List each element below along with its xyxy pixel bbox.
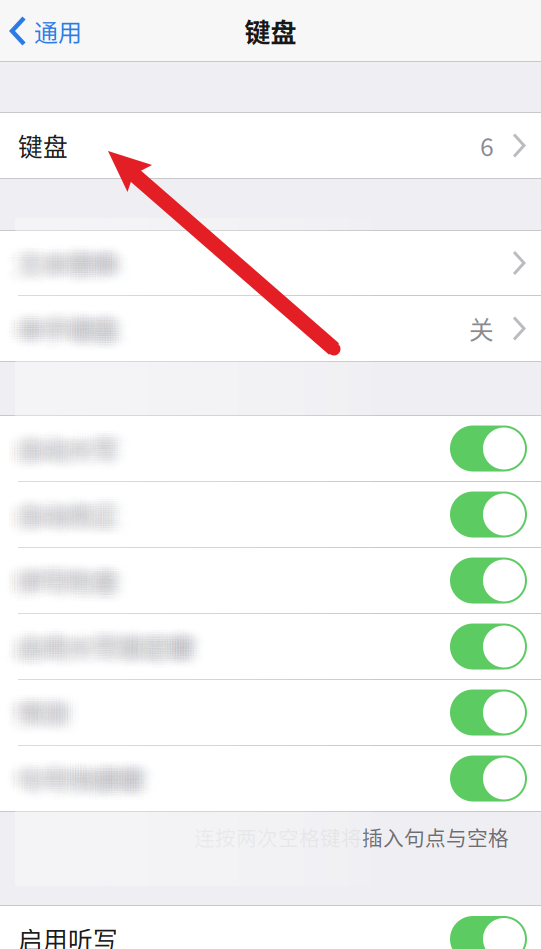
staticText: 自动大写 bbox=[23, 433, 123, 468]
staticText: 自动改正 bbox=[26, 492, 126, 528]
staticText: 文本替换 bbox=[23, 252, 123, 287]
staticText: 单手键盘 bbox=[8, 311, 108, 346]
staticText: 自动改正 bbox=[28, 501, 128, 537]
staticText: 单手键盘 bbox=[8, 308, 108, 344]
staticText: 拼写检查 bbox=[13, 560, 113, 596]
staticText: 句号快捷键 bbox=[10, 769, 135, 805]
button[interactable]: 启用大写锁定键 bbox=[450, 623, 527, 669]
staticText: 启用大写锁定键 bbox=[13, 624, 188, 660]
button[interactable]: 键盘 bbox=[0, 113, 541, 178]
staticText: 自动改正 bbox=[21, 505, 121, 541]
staticText: 拼写检查 bbox=[23, 563, 123, 598]
staticText: 自动大写 bbox=[15, 428, 115, 464]
staticText: 单手键盘 bbox=[13, 315, 113, 351]
button[interactable]: 文本替换 bbox=[0, 231, 541, 295]
staticText: 单手键盘 bbox=[13, 313, 113, 348]
staticText: 自动大写 bbox=[5, 428, 105, 464]
staticText: 单手键盘 bbox=[23, 315, 123, 351]
button[interactable]: 通用 bbox=[0, 0, 90, 62]
staticText: 自动改正 bbox=[10, 503, 110, 539]
staticText: 拼写检查 bbox=[31, 565, 131, 600]
staticText: 自动改正 bbox=[8, 499, 108, 534]
staticText: 文本替换 bbox=[5, 241, 105, 276]
button[interactable]: 自动大写 bbox=[450, 425, 527, 471]
staticText: 拼写检查 bbox=[23, 556, 123, 592]
staticText: 自动改正 bbox=[5, 499, 105, 534]
staticText: 自动改正 bbox=[28, 492, 128, 528]
staticText: 启用大写锁定键 bbox=[28, 624, 203, 660]
staticText: 句号快捷键 bbox=[23, 765, 148, 801]
staticText: 文本替换 bbox=[10, 243, 110, 279]
button[interactable]: 句号快捷键 bbox=[450, 755, 527, 801]
staticText: 自动改正 bbox=[18, 501, 118, 537]
staticText: 自动大写 bbox=[31, 433, 131, 468]
staticText: 自动大写 bbox=[13, 428, 113, 464]
staticText: 文本替换 bbox=[23, 249, 123, 285]
staticText: 拼写检查 bbox=[23, 571, 123, 607]
staticText: 启用大写锁定键 bbox=[23, 620, 198, 655]
staticText: 启用大写锁定键 bbox=[18, 633, 193, 669]
staticText: 文本替换 bbox=[15, 236, 115, 272]
button[interactable]: 预测 bbox=[450, 689, 527, 735]
staticText: 自动改正 bbox=[21, 503, 121, 539]
staticText: 单手键盘 bbox=[26, 311, 126, 346]
staticText: 拼写检查 bbox=[34, 563, 134, 598]
staticText: 拼写检查 bbox=[26, 556, 126, 592]
button[interactable]: 单手键盘 bbox=[0, 296, 541, 361]
staticText: 单手键盘 bbox=[8, 317, 108, 353]
staticText: 自动改正 bbox=[21, 492, 121, 528]
staticText: 自动大写 bbox=[28, 431, 128, 466]
staticText: 启用大写锁定键 bbox=[26, 624, 201, 660]
staticText: 启用大写锁定键 bbox=[18, 631, 193, 666]
staticText: 句号快捷键 bbox=[28, 761, 153, 796]
staticText: 自动改正 bbox=[10, 488, 110, 523]
staticText: 自动大写 bbox=[23, 428, 123, 464]
staticText: 自动改正 bbox=[28, 499, 128, 534]
staticText: 预测 bbox=[5, 690, 55, 726]
staticText: 自动改正 bbox=[8, 490, 108, 526]
staticText: 自动大写 bbox=[26, 424, 126, 460]
staticText: 拼写检查 bbox=[15, 563, 115, 598]
staticText: 预测 bbox=[8, 695, 58, 730]
staticText: 单手键盘 bbox=[15, 315, 115, 351]
staticText: 预测 bbox=[8, 697, 58, 732]
staticText: 自动改正 bbox=[28, 494, 128, 530]
staticText: 拼写检查 bbox=[15, 554, 115, 589]
staticText: 拼写检查 bbox=[28, 556, 128, 592]
staticText: 自动大写 bbox=[26, 431, 126, 466]
staticText: 自动改正 bbox=[10, 490, 110, 526]
staticText: 启用大写锁定键 bbox=[18, 635, 193, 671]
staticText: 句号快捷键 bbox=[15, 752, 140, 787]
staticText: 启用大写锁定键 bbox=[18, 629, 193, 664]
staticText: 拼写检查 bbox=[18, 569, 118, 605]
staticText: 预测 bbox=[23, 701, 73, 737]
staticText: 拼写检查 bbox=[13, 569, 113, 605]
staticText: 单手键盘 bbox=[28, 306, 128, 342]
staticText: 拼写检查 bbox=[18, 558, 118, 594]
staticText: 自动大写 bbox=[5, 426, 105, 462]
button[interactable]: 启用听写 bbox=[450, 916, 527, 949]
button[interactable]: 拼写检查 bbox=[450, 557, 527, 603]
staticText: 自动大写 bbox=[13, 433, 113, 468]
button[interactable]: 自动改正 bbox=[450, 491, 527, 537]
staticText: 文本替换 bbox=[26, 241, 126, 276]
staticText: 句号快捷键 bbox=[13, 752, 138, 787]
staticText: 启用大写锁定键 bbox=[28, 626, 203, 662]
staticText: 句号快捷键 bbox=[13, 758, 138, 794]
staticText: 启用大写锁定键 bbox=[28, 622, 203, 658]
staticText: 文本替换 bbox=[13, 241, 113, 276]
staticText: 启用大写锁定键 bbox=[13, 635, 188, 671]
staticText: 拼写检查 bbox=[26, 563, 126, 598]
staticText: 自动改正 bbox=[15, 490, 115, 526]
staticText: 自动改正 bbox=[2, 499, 102, 534]
staticText: 自动大写 bbox=[21, 424, 121, 460]
staticText: 启用大写锁定键 bbox=[10, 629, 185, 664]
staticText: 单手键盘 bbox=[10, 317, 110, 353]
staticText: 单手键盘 bbox=[15, 302, 115, 337]
staticText: 拼写检查 bbox=[18, 567, 118, 603]
staticText: 单手键盘 bbox=[18, 313, 118, 348]
staticText: 自动大写 bbox=[13, 424, 113, 460]
staticText: 预测 bbox=[18, 697, 68, 732]
staticText: 文本替换 bbox=[31, 241, 131, 276]
staticText: 单手键盘 bbox=[15, 311, 115, 346]
